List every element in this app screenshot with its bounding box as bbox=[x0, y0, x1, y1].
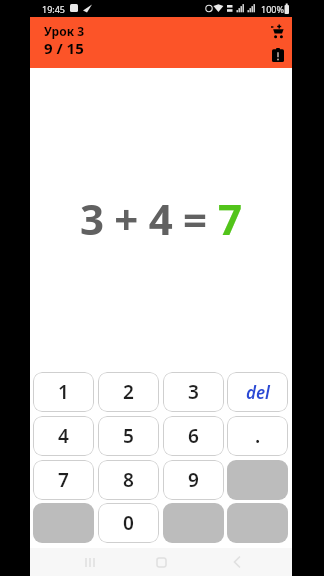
button[interactable]: 1 bbox=[33, 372, 94, 412]
button[interactable] bbox=[267, 20, 289, 42]
staticText: 2 bbox=[123, 379, 134, 405]
button[interactable]: 0 bbox=[98, 503, 159, 543]
staticText: 4 bbox=[58, 423, 69, 449]
button[interactable]: 3 bbox=[163, 372, 224, 412]
button[interactable]: 7 bbox=[33, 460, 94, 500]
button[interactable] bbox=[227, 503, 288, 543]
staticText: 7 bbox=[218, 190, 243, 244]
button[interactable] bbox=[267, 44, 289, 66]
staticText: . bbox=[255, 423, 261, 449]
button[interactable]: 5 bbox=[98, 416, 159, 456]
staticText: 0 bbox=[123, 510, 134, 536]
staticText: 100% bbox=[261, 3, 284, 15]
staticText: 1 bbox=[58, 379, 69, 405]
button[interactable] bbox=[163, 503, 224, 543]
staticText: Урок 3 bbox=[44, 23, 85, 39]
button[interactable] bbox=[225, 550, 249, 574]
staticText: 3 bbox=[188, 379, 199, 405]
staticText: 8 bbox=[123, 467, 134, 493]
staticText: 19:45 bbox=[42, 3, 66, 15]
button[interactable] bbox=[227, 460, 288, 500]
button[interactable]: 8 bbox=[98, 460, 159, 500]
staticText: 5 bbox=[123, 423, 134, 449]
button[interactable]: . bbox=[227, 416, 288, 456]
button[interactable] bbox=[78, 550, 102, 574]
button[interactable]: 9 bbox=[163, 460, 224, 500]
staticText: 7 bbox=[58, 467, 69, 493]
button[interactable] bbox=[149, 550, 173, 574]
staticText: 9 / 15 bbox=[44, 38, 84, 58]
button[interactable]: del bbox=[227, 372, 288, 412]
button[interactable]: 2 bbox=[98, 372, 159, 412]
button[interactable]: 4 bbox=[33, 416, 94, 456]
staticText: 6 bbox=[188, 423, 199, 449]
button[interactable] bbox=[33, 503, 94, 543]
staticText: 9 bbox=[188, 467, 199, 493]
staticText: del bbox=[246, 381, 270, 404]
staticText: 3 + 4 = bbox=[80, 190, 218, 244]
button[interactable]: 6 bbox=[163, 416, 224, 456]
